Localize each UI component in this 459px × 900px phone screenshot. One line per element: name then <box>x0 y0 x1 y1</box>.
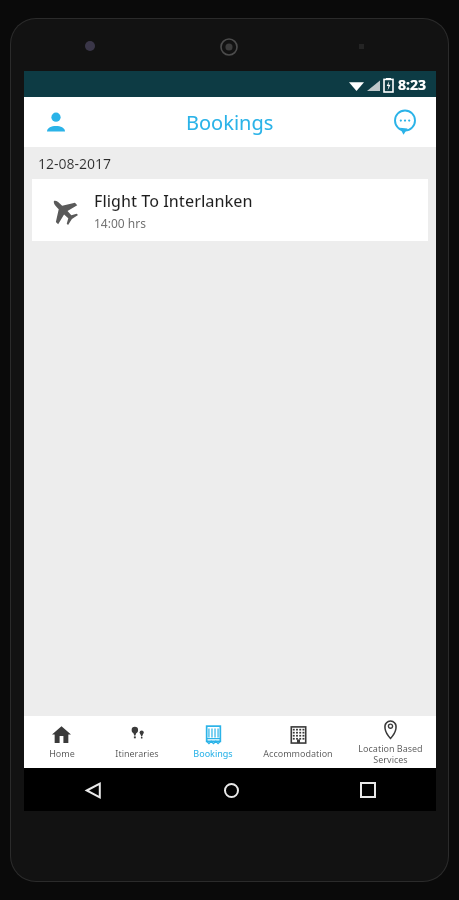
button[interactable]: Accommodation <box>251 716 345 768</box>
staticText: Accommodation <box>263 747 333 759</box>
button[interactable]: Bookings <box>175 716 251 768</box>
staticText: Flight To Interlanken <box>94 190 253 212</box>
staticText: 8:23 <box>398 75 426 94</box>
button[interactable]: Messages <box>384 102 424 142</box>
staticText: Bookings <box>193 747 233 759</box>
button[interactable]: Location Based Services <box>345 716 436 768</box>
button[interactable]: Home <box>214 773 248 807</box>
button[interactable]: Profile <box>36 102 76 142</box>
button[interactable]: Home <box>24 716 99 768</box>
button[interactable]: Flight To Interlanken <box>32 179 428 241</box>
button[interactable]: Recent apps <box>351 773 385 807</box>
staticText: Itineraries <box>115 747 159 759</box>
staticText: 12-08-2017 <box>38 154 112 173</box>
button[interactable]: Back <box>76 773 110 807</box>
staticText: Home <box>49 747 75 759</box>
button[interactable]: Itineraries <box>99 716 175 768</box>
staticText: 14:00 hrs <box>94 215 146 231</box>
staticText: Bookings <box>186 109 274 136</box>
staticText: Location Based Services <box>358 742 423 765</box>
